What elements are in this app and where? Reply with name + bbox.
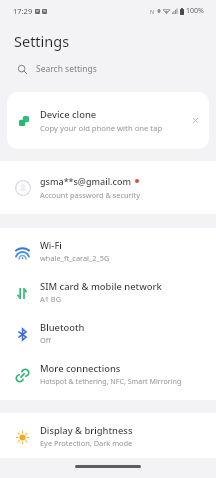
- button[interactable]: Device clone: [7, 92, 209, 149]
- button[interactable]: SIM card & mobile network: [0, 271, 216, 312]
- staticText: SIM card & mobile network: [40, 280, 162, 293]
- button[interactable]: More connections: [0, 353, 216, 394]
- staticText: Copy your old phone with one tap: [40, 123, 163, 133]
- staticText: N: [150, 8, 155, 15]
- staticText: Wi-Fi: [40, 239, 62, 252]
- staticText: whale_ft_caral_2_5G: [40, 253, 110, 263]
- staticText: 100%: [186, 6, 204, 16]
- staticText: Off: [40, 335, 51, 345]
- button[interactable]: Wi-Fi: [0, 230, 216, 271]
- staticText: More connections: [40, 362, 121, 375]
- button[interactable]: Display & brightness: [0, 415, 216, 456]
- staticText: Eye Protection, Dark mode: [40, 438, 133, 448]
- staticText: Hotspot & tethering, NFC, Smart Mirrorin…: [40, 376, 182, 386]
- staticText: 17:29: [13, 6, 33, 16]
- staticText: Settings: [14, 31, 70, 51]
- staticText: Search settings: [36, 63, 97, 75]
- button[interactable]: gsma**s@gmail.com: [0, 161, 216, 214]
- staticText: A1 BG: [40, 294, 62, 304]
- staticText: gsma**s@gmail.com: [40, 175, 131, 187]
- staticText: Display & brightness: [40, 424, 133, 437]
- staticText: Bluetooth: [40, 321, 85, 334]
- staticText: Device clone: [40, 108, 97, 121]
- button[interactable]: Search settings: [0, 56, 216, 80]
- button[interactable]: Bluetooth: [0, 312, 216, 353]
- button[interactable]: Dismiss device clone: [182, 92, 209, 149]
- staticText: Account password & security: [40, 190, 140, 200]
